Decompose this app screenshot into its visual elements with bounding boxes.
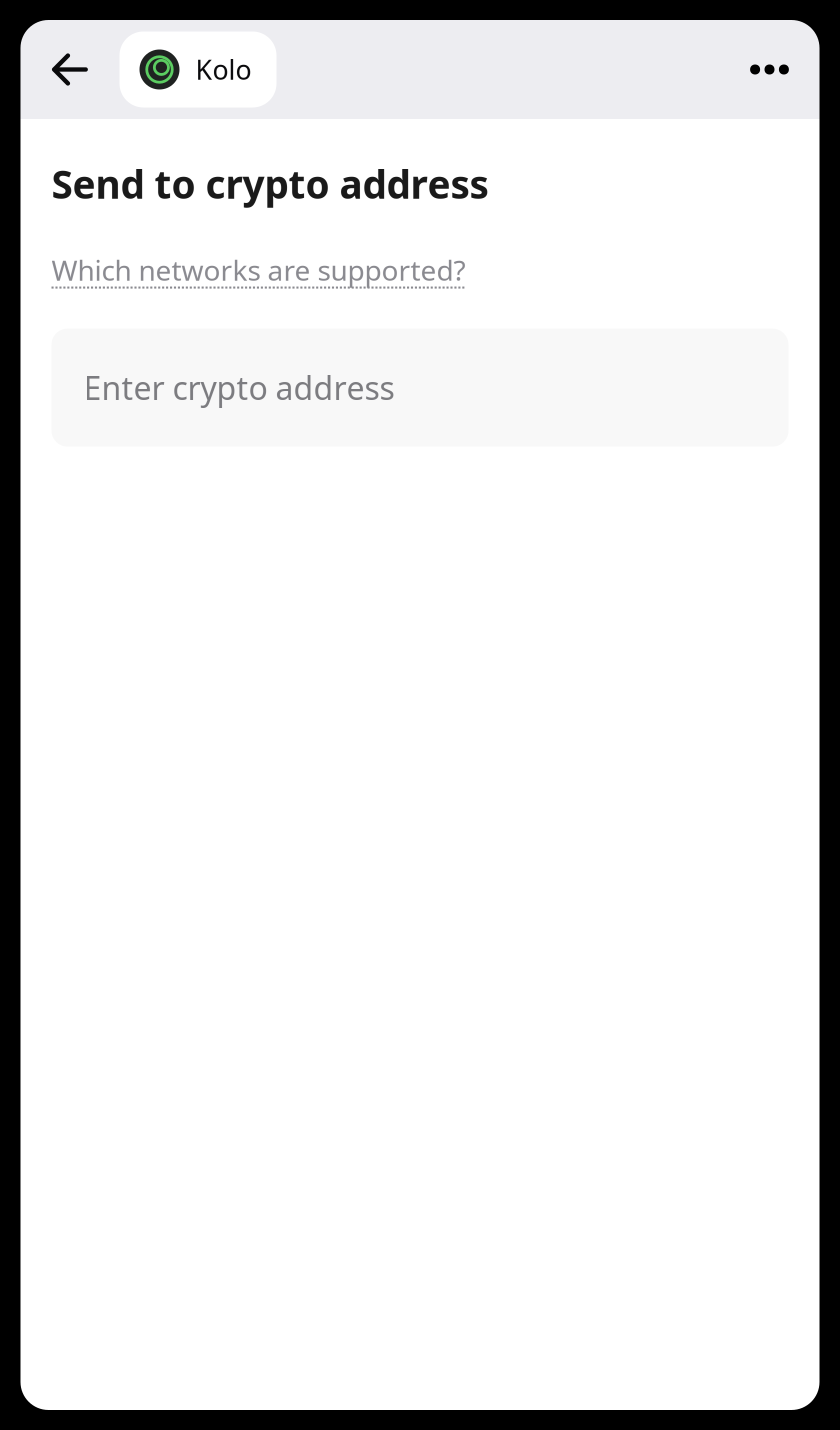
staticText: Send to crypto address: [51, 158, 488, 209]
button[interactable]: Kolo: [119, 31, 276, 107]
button[interactable]: Enter crypto address: [51, 329, 788, 447]
staticText: Which networks are supported?: [51, 251, 465, 288]
staticText: Enter crypto address: [83, 366, 394, 409]
staticText: Kolo: [195, 52, 251, 87]
button[interactable]: Back: [20, 20, 119, 119]
button[interactable]: More options: [721, 20, 817, 119]
button[interactable]: Which networks are supported?: [51, 251, 465, 291]
